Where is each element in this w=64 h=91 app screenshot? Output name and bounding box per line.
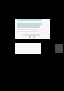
button[interactable]: Preview xyxy=(55,44,63,53)
button[interactable] xyxy=(15,19,50,39)
